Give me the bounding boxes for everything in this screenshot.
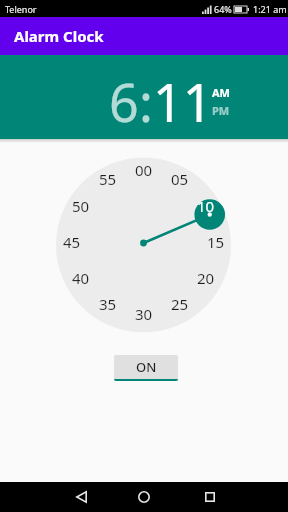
button[interactable]: ON: [114, 355, 178, 381]
staticText: 30: [135, 304, 153, 324]
staticText: :: [139, 66, 153, 137]
button[interactable]: 50: [67, 196, 95, 216]
button[interactable]: [182, 482, 238, 512]
staticText: 00: [135, 160, 153, 180]
button[interactable]: 20: [192, 268, 220, 288]
button[interactable]: [51, 482, 107, 512]
button[interactable]: 05: [166, 169, 194, 189]
button[interactable]: [116, 482, 172, 512]
button[interactable]: Alarm Clock: [0, 17, 288, 55]
button[interactable]: PM: [212, 103, 230, 118]
staticText: 25: [171, 294, 189, 314]
button[interactable]: 40: [67, 268, 95, 288]
button[interactable]: 55: [94, 169, 122, 189]
button[interactable]: 45: [58, 232, 86, 252]
staticText: 50: [72, 196, 90, 216]
button[interactable]: 11: [153, 66, 213, 137]
button[interactable]: 6: [109, 66, 139, 137]
button[interactable]: 30: [130, 304, 158, 324]
staticText: 1:21 am: [253, 3, 287, 15]
button[interactable]: 15: [202, 232, 230, 252]
staticText: ON: [136, 358, 157, 376]
staticText: Telenor: [5, 3, 37, 15]
staticText: 10: [197, 196, 215, 216]
staticText: 55: [99, 169, 117, 189]
staticText: 64%: [214, 3, 232, 15]
staticText: 45: [63, 232, 81, 252]
button[interactable]: 00: [130, 160, 158, 180]
staticText: Alarm Clock: [14, 26, 104, 46]
staticText: 05: [171, 169, 189, 189]
button[interactable]: 25: [166, 294, 194, 314]
staticText: 40: [72, 268, 90, 288]
button[interactable]: AM: [212, 85, 230, 100]
button[interactable]: 35: [94, 294, 122, 314]
staticText: 15: [207, 232, 225, 252]
staticText: 20: [197, 268, 215, 288]
staticText: 35: [99, 294, 117, 314]
button[interactable]: 10: [192, 196, 220, 216]
